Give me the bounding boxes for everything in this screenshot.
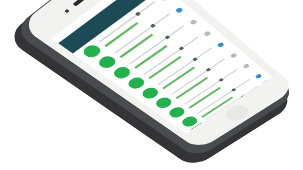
button[interactable] bbox=[118, 23, 221, 95]
button[interactable] bbox=[132, 34, 234, 105]
button[interactable] bbox=[146, 45, 247, 115]
button[interactable] bbox=[103, 11, 208, 85]
button[interactable] bbox=[173, 67, 271, 133]
button[interactable] bbox=[185, 77, 272, 133]
button[interactable] bbox=[88, 0, 194, 75]
button[interactable] bbox=[160, 56, 259, 124]
button[interactable]: Home bbox=[222, 102, 253, 123]
button[interactable] bbox=[58, 0, 164, 54]
button[interactable] bbox=[73, 0, 179, 65]
